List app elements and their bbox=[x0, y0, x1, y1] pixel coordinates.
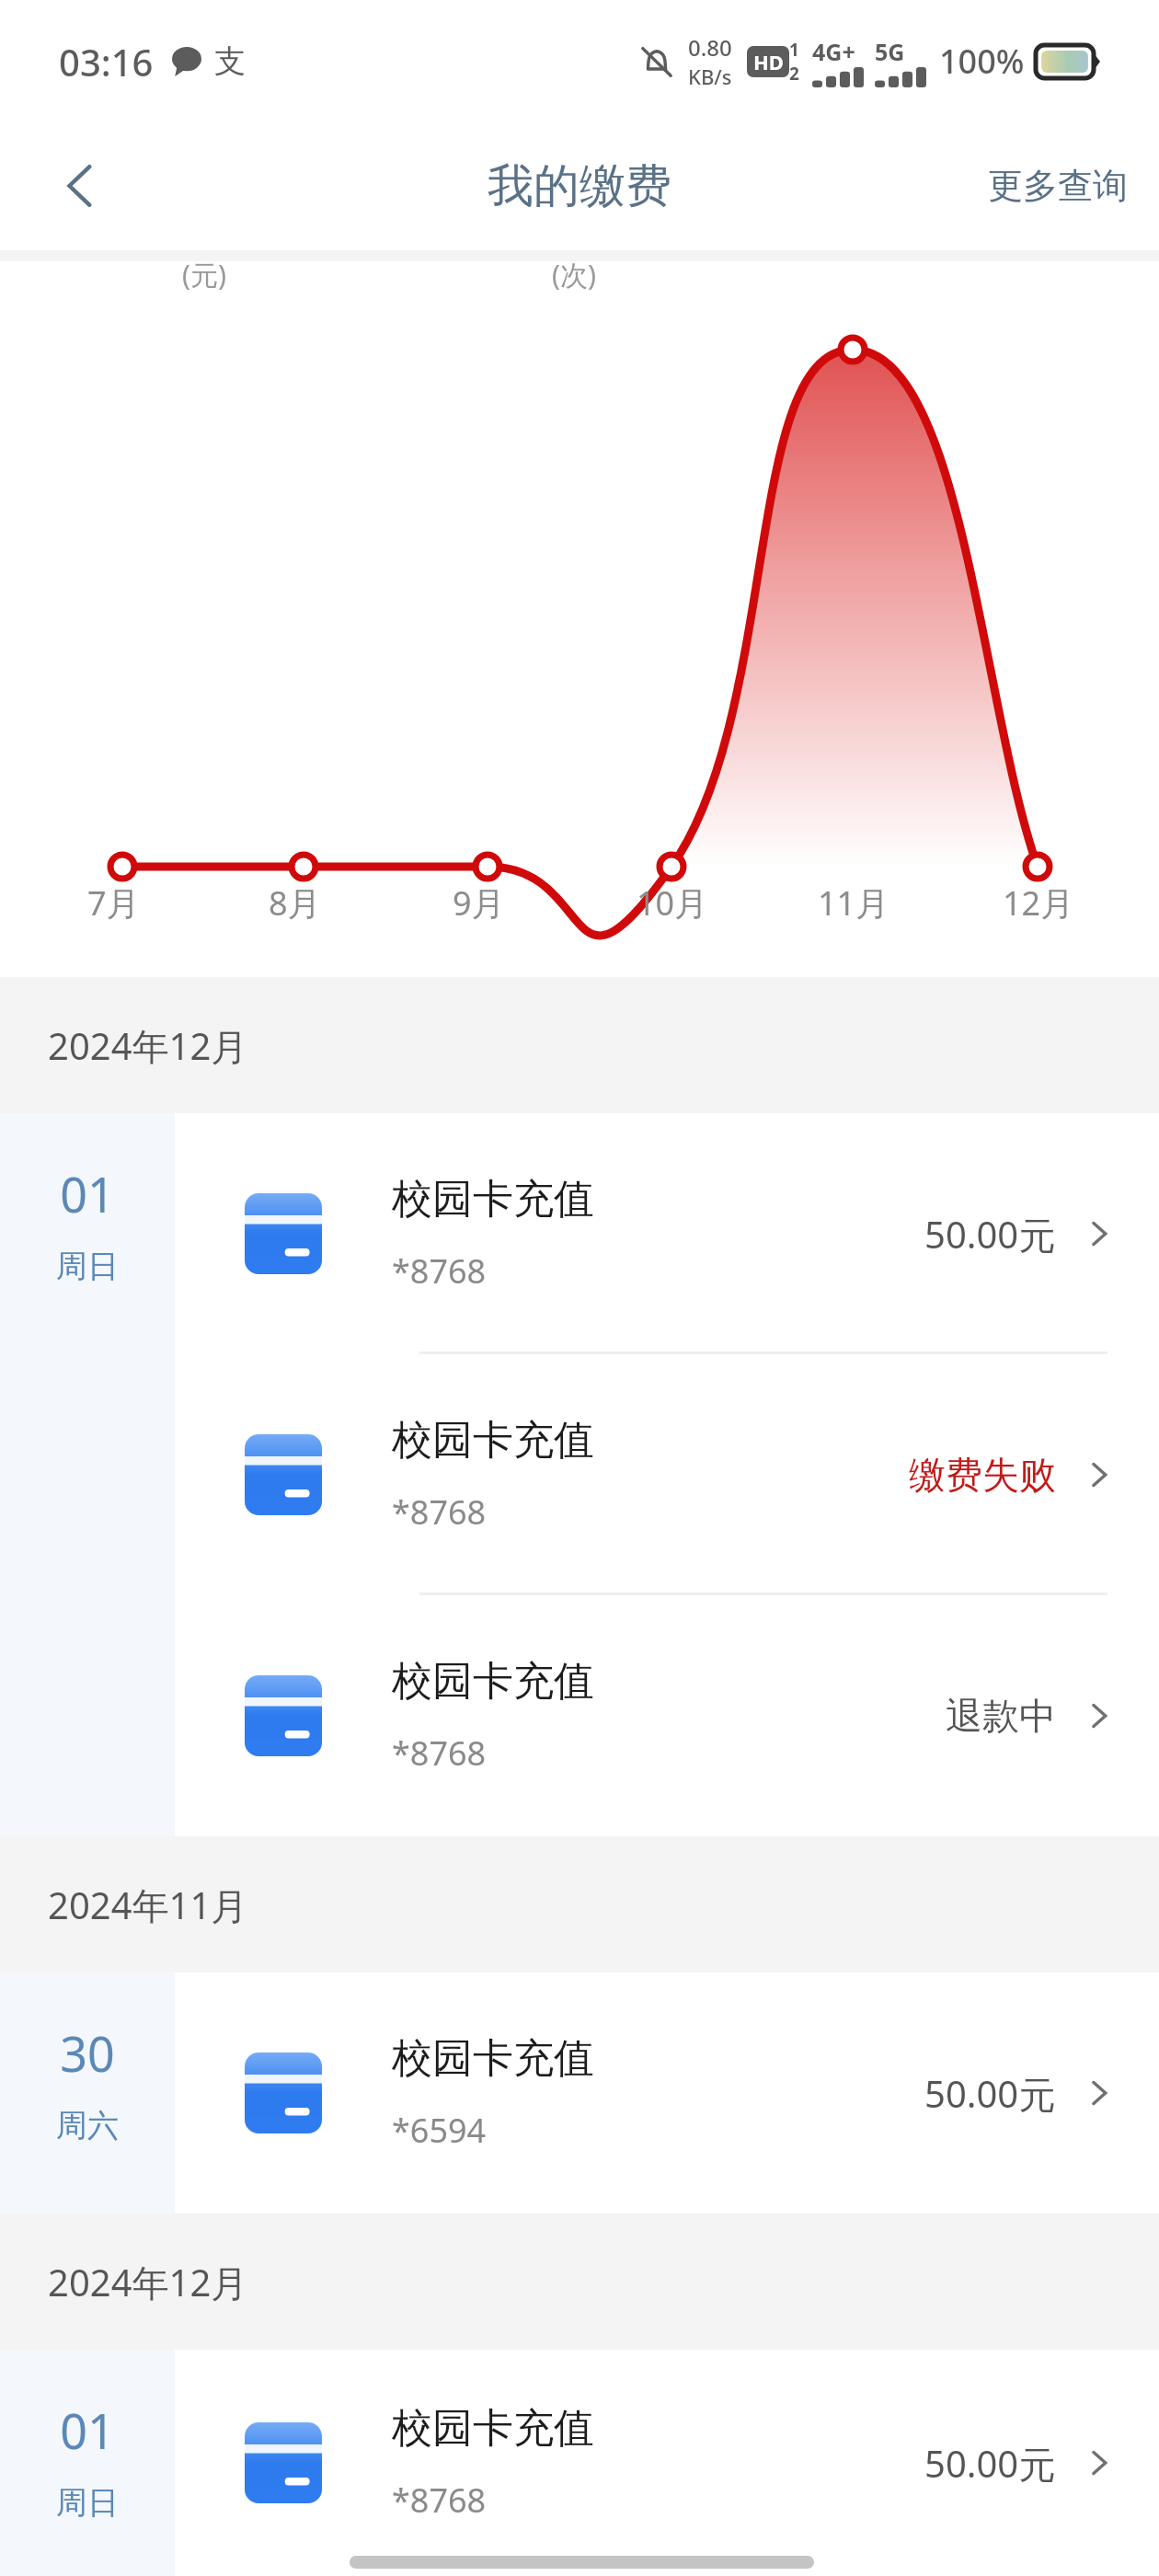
staticText: 支 bbox=[214, 41, 246, 81]
staticText: 4G+ bbox=[812, 36, 855, 67]
staticText: 更多查询 bbox=[988, 164, 1128, 208]
staticText: 12月 bbox=[1003, 880, 1074, 926]
staticText: *8768 bbox=[392, 1489, 487, 1535]
staticText: 周六 bbox=[56, 2106, 119, 2145]
staticText: HD bbox=[753, 48, 784, 75]
staticText: 30 bbox=[60, 2020, 115, 2086]
staticText: 周日 bbox=[56, 1247, 119, 1286]
staticText: *8768 bbox=[392, 1248, 487, 1294]
staticText: 周日 bbox=[56, 2483, 119, 2523]
staticText: 校园卡充值 bbox=[392, 1174, 594, 1225]
staticText: KB/s bbox=[688, 63, 732, 90]
staticText: 校园卡充值 bbox=[392, 1656, 594, 1707]
staticText: 8月 bbox=[269, 880, 321, 926]
staticText: 0.80 bbox=[688, 32, 732, 63]
staticText: (元) bbox=[182, 256, 226, 293]
staticText: 9月 bbox=[453, 880, 505, 926]
staticText: 01 bbox=[60, 2398, 115, 2463]
staticText: 校园卡充值 bbox=[392, 1415, 594, 1466]
staticText: 2024年12月 bbox=[48, 2257, 248, 2307]
staticText: 01 bbox=[60, 1161, 115, 1226]
staticText: 校园卡充值 bbox=[392, 2033, 594, 2084]
staticText: 11月 bbox=[818, 880, 889, 926]
staticText: 10月 bbox=[637, 880, 708, 926]
button[interactable]: 校园卡充值 bbox=[175, 1972, 1159, 2214]
button[interactable]: 更多查询 bbox=[957, 144, 1159, 228]
staticText: 缴费失败 bbox=[909, 1452, 1056, 1498]
staticText: 50.00元 bbox=[924, 1209, 1056, 1259]
staticText: 2 bbox=[789, 62, 799, 86]
staticText: 5G bbox=[875, 36, 905, 67]
staticText: 100% bbox=[939, 39, 1025, 84]
staticText: 7月 bbox=[87, 880, 140, 926]
button[interactable]: 校园卡充值 bbox=[175, 1113, 1159, 1354]
staticText: 03:16 bbox=[59, 37, 154, 86]
button[interactable]: 校园卡充值 bbox=[175, 1354, 1159, 1595]
staticText: 2024年12月 bbox=[48, 1020, 248, 1071]
staticText: 我的缴费 bbox=[488, 157, 671, 215]
button[interactable]: 校园卡充值 bbox=[175, 2350, 1159, 2576]
staticText: *8768 bbox=[392, 2478, 487, 2523]
staticText: 2024年11月 bbox=[48, 1880, 248, 1930]
staticText: 50.00元 bbox=[924, 2068, 1056, 2119]
staticText: 50.00元 bbox=[924, 2438, 1056, 2489]
staticText: *6594 bbox=[392, 2108, 487, 2153]
staticText: 校园卡充值 bbox=[392, 2403, 594, 2454]
staticText: *8768 bbox=[392, 1731, 487, 1776]
staticText: (次) bbox=[552, 256, 596, 293]
button[interactable]: Back bbox=[37, 142, 125, 230]
staticText: 1 bbox=[789, 38, 799, 62]
staticText: 退款中 bbox=[946, 1693, 1056, 1739]
button[interactable]: 校园卡充值 bbox=[175, 1595, 1159, 1836]
